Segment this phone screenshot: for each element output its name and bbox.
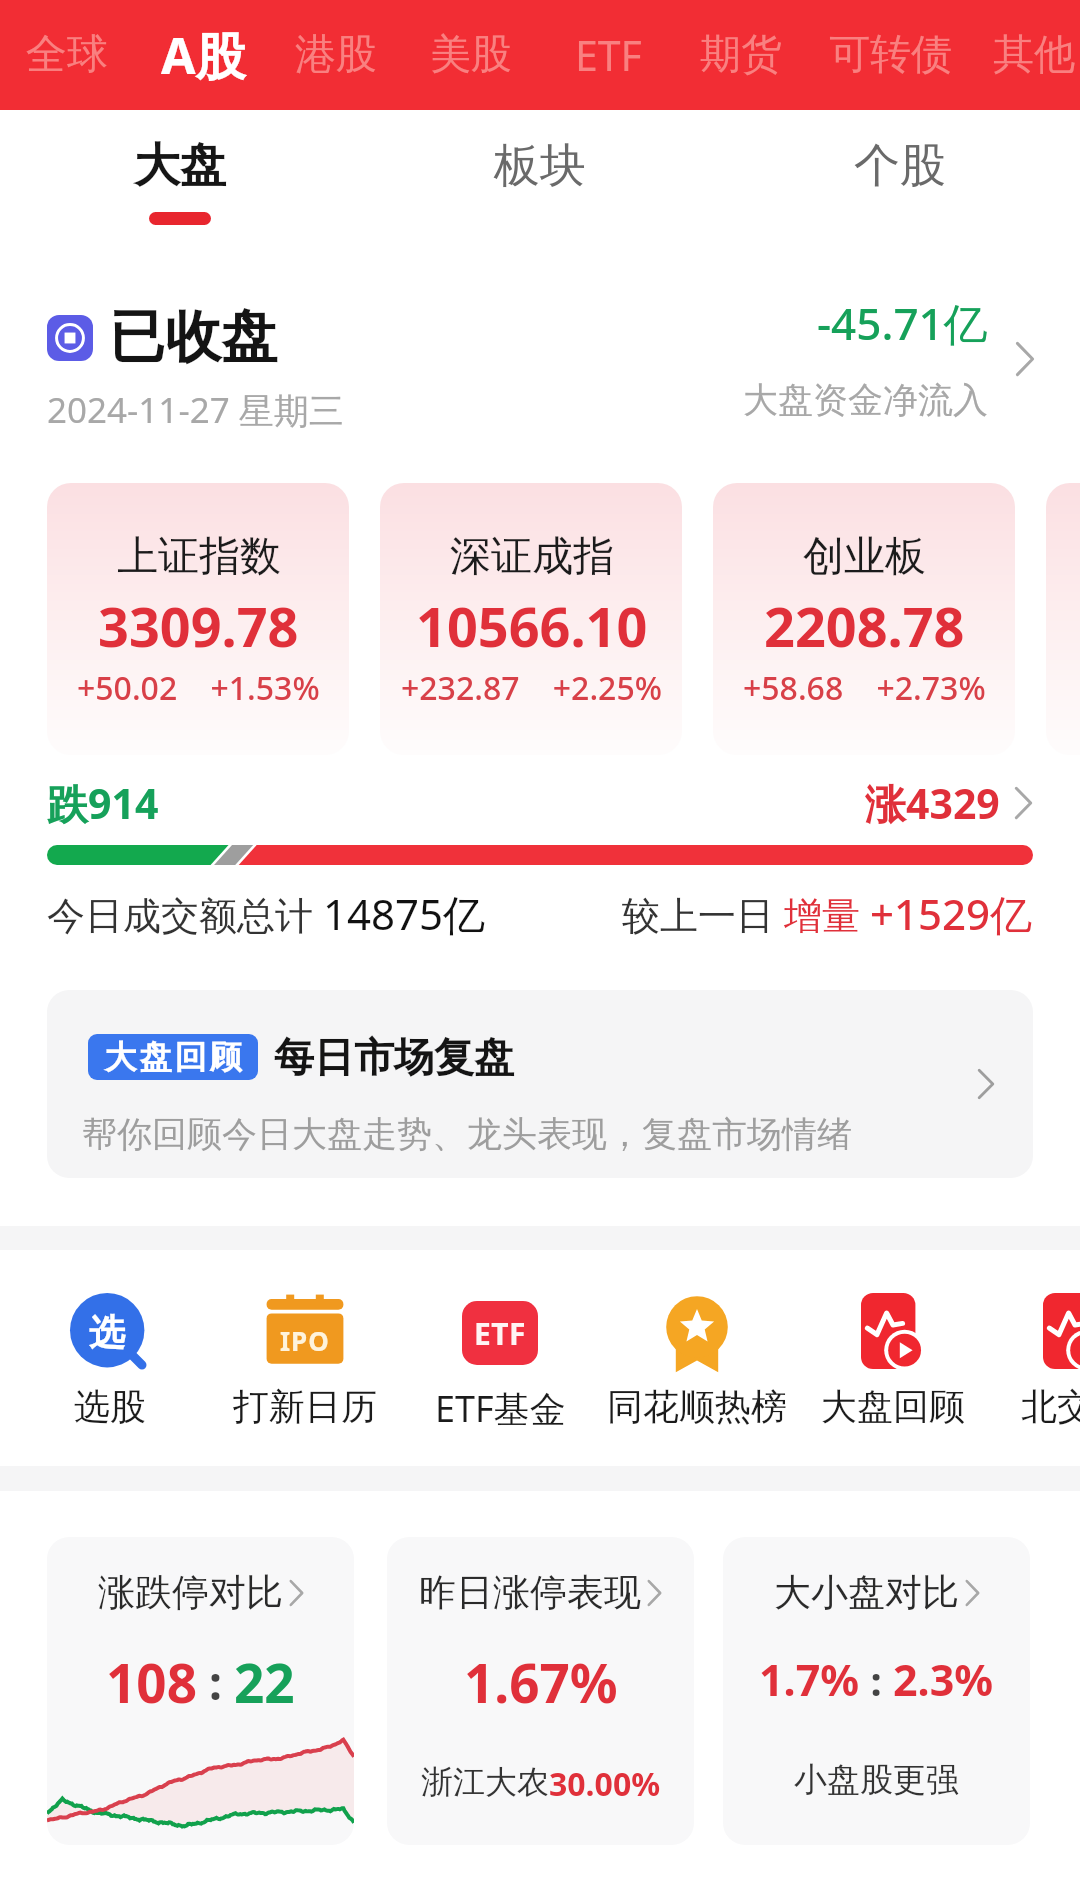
staticText: 2024-11-27 星期三 bbox=[47, 386, 344, 434]
staticText: 大盘 bbox=[134, 137, 226, 195]
staticText: ETF基金 bbox=[435, 1384, 566, 1433]
staticText: +58.68 +2.73% bbox=[743, 666, 986, 710]
button[interactable]: 昨日涨停表现 bbox=[387, 1537, 694, 1845]
staticText: 涨4329 bbox=[865, 775, 1000, 831]
staticText: 上证指数 bbox=[117, 531, 281, 583]
button[interactable]: 大盘回顾 bbox=[47, 990, 1033, 1178]
staticText: 14875亿 bbox=[323, 885, 486, 942]
staticText: 美股 bbox=[430, 29, 512, 81]
staticText: +1529亿 bbox=[870, 885, 1033, 942]
staticText: 22 bbox=[234, 1646, 295, 1718]
staticText: 其他 bbox=[993, 29, 1075, 81]
staticText: IPO bbox=[280, 1323, 330, 1358]
staticText: 大盘回顾 bbox=[103, 1037, 243, 1077]
staticText: : bbox=[860, 1653, 893, 1707]
staticText: 深证成指 bbox=[450, 531, 614, 583]
staticText: 选股 bbox=[74, 1384, 146, 1429]
other: 打新日历 bbox=[265, 1293, 345, 1373]
other: 大盘回顾 bbox=[853, 1293, 933, 1373]
staticText: 已收盘 bbox=[109, 302, 277, 373]
button[interactable]: 深证成指 bbox=[380, 483, 682, 755]
button[interactable]: A股 bbox=[137, 0, 269, 110]
button[interactable]: 创业板 bbox=[713, 483, 1015, 755]
button[interactable]: 打新日历 bbox=[195, 1293, 415, 1429]
other: 同花顺热榜 bbox=[657, 1293, 737, 1373]
button[interactable]: 美股 bbox=[405, 0, 537, 110]
button[interactable]: 大盘 bbox=[30, 110, 330, 245]
button[interactable]: 板块 bbox=[390, 110, 690, 245]
staticText: 2208.78 bbox=[764, 589, 965, 663]
staticText: 创业板 bbox=[803, 531, 926, 583]
staticText: 1.67% bbox=[464, 1646, 618, 1718]
staticText: 大盘回顾 bbox=[821, 1384, 965, 1429]
button[interactable]: 选股 bbox=[0, 1293, 220, 1429]
staticText: A股 bbox=[161, 21, 246, 89]
button[interactable]: 期货 bbox=[675, 0, 807, 110]
staticText: 全球 bbox=[26, 29, 108, 81]
staticText: 今日成交额总计 bbox=[47, 888, 323, 940]
staticText: 涨跌停对比 bbox=[98, 1569, 283, 1616]
button[interactable]: 跌914 bbox=[47, 775, 1033, 831]
staticText: ETF bbox=[575, 27, 642, 83]
staticText: 1.7% bbox=[759, 1650, 860, 1709]
button[interactable] bbox=[1046, 483, 1080, 755]
staticText: -45.71亿 bbox=[817, 293, 988, 353]
button[interactable]: 大小盘对比 bbox=[723, 1537, 1030, 1845]
staticText: ETF bbox=[474, 1313, 527, 1354]
other: 北交所 bbox=[1035, 1293, 1080, 1373]
button[interactable]: 个股 bbox=[750, 110, 1050, 245]
staticText: 10566.10 bbox=[416, 589, 648, 663]
staticText: 个股 bbox=[854, 137, 946, 195]
button[interactable]: 上证指数 bbox=[47, 483, 349, 755]
button[interactable]: 大盘回顾 bbox=[783, 1293, 1003, 1429]
button[interactable]: 已收盘 bbox=[0, 295, 1080, 445]
staticText: +50.02 +1.53% bbox=[77, 666, 320, 710]
staticText: 大盘资金净流入 bbox=[743, 378, 988, 422]
button[interactable]: 可转债 bbox=[824, 0, 956, 110]
staticText: 每日市场复盘 bbox=[274, 1032, 514, 1082]
staticText: 增量 bbox=[784, 888, 870, 940]
staticText: 北交所 bbox=[1021, 1384, 1080, 1429]
staticText: : bbox=[197, 1651, 234, 1714]
staticText: 大小盘对比 bbox=[774, 1569, 959, 1616]
staticText: +232.87 +2.25% bbox=[401, 666, 662, 710]
button[interactable]: 其他 bbox=[968, 0, 1080, 110]
staticText: 打新日历 bbox=[233, 1384, 377, 1429]
staticText: 帮你回顾今日大盘走势、龙头表现，复盘市场情绪 bbox=[82, 1112, 852, 1156]
staticText: 昨日涨停表现 bbox=[419, 1569, 641, 1616]
other: 资金流入详情 bbox=[1015, 342, 1035, 376]
staticText: 期货 bbox=[700, 29, 782, 81]
button[interactable]: ETF基金 bbox=[390, 1293, 610, 1433]
staticText: 同花顺热榜 bbox=[607, 1384, 787, 1429]
button[interactable]: ETF bbox=[542, 0, 674, 110]
staticText: 3309.78 bbox=[98, 589, 299, 663]
other: ETF基金 bbox=[460, 1293, 540, 1373]
staticText: 选 bbox=[89, 1310, 125, 1355]
staticText: 小盘股更强 bbox=[794, 1759, 959, 1801]
staticText: 港股 bbox=[295, 29, 377, 81]
staticText: 较上一日 bbox=[622, 888, 784, 940]
staticText: 30.00% bbox=[549, 1762, 661, 1806]
button[interactable]: 港股 bbox=[270, 0, 402, 110]
button[interactable]: 全球 bbox=[1, 0, 133, 110]
staticText: 108 bbox=[106, 1646, 197, 1718]
staticText: 2.3% bbox=[893, 1650, 994, 1709]
button[interactable]: 北交所 bbox=[965, 1293, 1080, 1429]
staticText: 可转债 bbox=[829, 29, 952, 81]
other: 选股 bbox=[70, 1293, 150, 1373]
staticText: 板块 bbox=[494, 137, 586, 195]
button[interactable]: 涨跌停对比 bbox=[47, 1537, 354, 1845]
staticText: 浙江大农 bbox=[421, 1762, 549, 1802]
button[interactable]: 同花顺热榜 bbox=[587, 1293, 807, 1429]
staticText: 跌914 bbox=[47, 775, 159, 831]
